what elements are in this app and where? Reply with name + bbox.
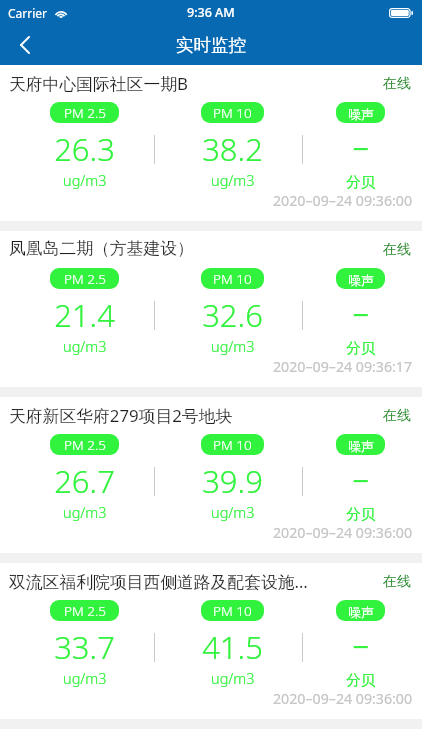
staticText: － xyxy=(345,294,376,333)
staticText: PM 2.5 xyxy=(64,436,106,454)
staticText: PM 2.5 xyxy=(64,270,106,288)
staticText: 2020–09–24 09:36:00 xyxy=(273,523,413,542)
staticText: 32.6 xyxy=(202,294,263,336)
button[interactable]: 凤凰岛二期（方基建设） xyxy=(0,231,422,387)
staticText: 噪声 xyxy=(348,438,374,454)
staticText: PM 10 xyxy=(213,104,252,122)
staticText: PM 2.5 xyxy=(64,104,106,122)
staticText: 9:36 AM xyxy=(187,4,235,21)
staticText: 41.5 xyxy=(202,626,263,668)
staticText: ug/m3 xyxy=(63,170,107,190)
staticText: 分贝 xyxy=(346,339,375,357)
staticText: 双流区福利院项目西侧道路及配套设施… xyxy=(9,570,308,593)
staticText: 2020–09–24 09:36:17 xyxy=(273,357,413,376)
staticText: ug/m3 xyxy=(211,668,255,688)
staticText: － xyxy=(345,626,376,665)
staticText: 2020–09–24 09:36:00 xyxy=(273,191,413,210)
staticText: 天府新区华府279项目2号地块 xyxy=(9,404,233,427)
staticText: － xyxy=(345,128,376,167)
staticText: 33.7 xyxy=(54,626,115,668)
staticText: PM 10 xyxy=(213,436,252,454)
staticText: 38.2 xyxy=(202,128,263,170)
staticText: 在线 xyxy=(383,75,411,93)
staticText: 2020–09–24 09:36:00 xyxy=(273,689,413,708)
staticText: 在线 xyxy=(383,407,411,425)
staticText: ug/m3 xyxy=(211,170,255,190)
button[interactable]: Back xyxy=(0,25,50,65)
staticText: 分贝 xyxy=(346,505,375,523)
staticText: ug/m3 xyxy=(63,336,107,356)
staticText: 26.7 xyxy=(54,460,115,502)
staticText: 凤凰岛二期（方基建设） xyxy=(9,238,194,259)
staticText: 26.3 xyxy=(54,128,115,170)
staticText: 在线 xyxy=(383,241,411,259)
staticText: PM 2.5 xyxy=(64,602,106,620)
staticText: － xyxy=(345,460,376,499)
staticText: 噪声 xyxy=(348,604,374,620)
button[interactable]: 双流区福利院项目西侧道路及配套设施… xyxy=(0,563,422,719)
staticText: PM 10 xyxy=(213,270,252,288)
button[interactable]: 天府中心国际社区一期B xyxy=(0,65,422,221)
staticText: 39.9 xyxy=(202,460,263,502)
staticText: 21.4 xyxy=(54,294,115,336)
staticText: PM 10 xyxy=(213,602,252,620)
staticText: 分贝 xyxy=(346,173,375,191)
button[interactable]: 天府新区华府279项目2号地块 xyxy=(0,397,422,553)
staticText: 天府中心国际社区一期B xyxy=(9,72,188,95)
staticText: 噪声 xyxy=(348,106,374,122)
staticText: ug/m3 xyxy=(211,336,255,356)
staticText: ug/m3 xyxy=(211,502,255,522)
staticText: 实时监控 xyxy=(176,34,246,56)
staticText: 分贝 xyxy=(346,671,375,689)
staticText: ug/m3 xyxy=(63,668,107,688)
staticText: Carrier xyxy=(8,5,48,21)
staticText: ug/m3 xyxy=(63,502,107,522)
staticText: 在线 xyxy=(383,573,411,591)
staticText: 噪声 xyxy=(348,272,374,288)
